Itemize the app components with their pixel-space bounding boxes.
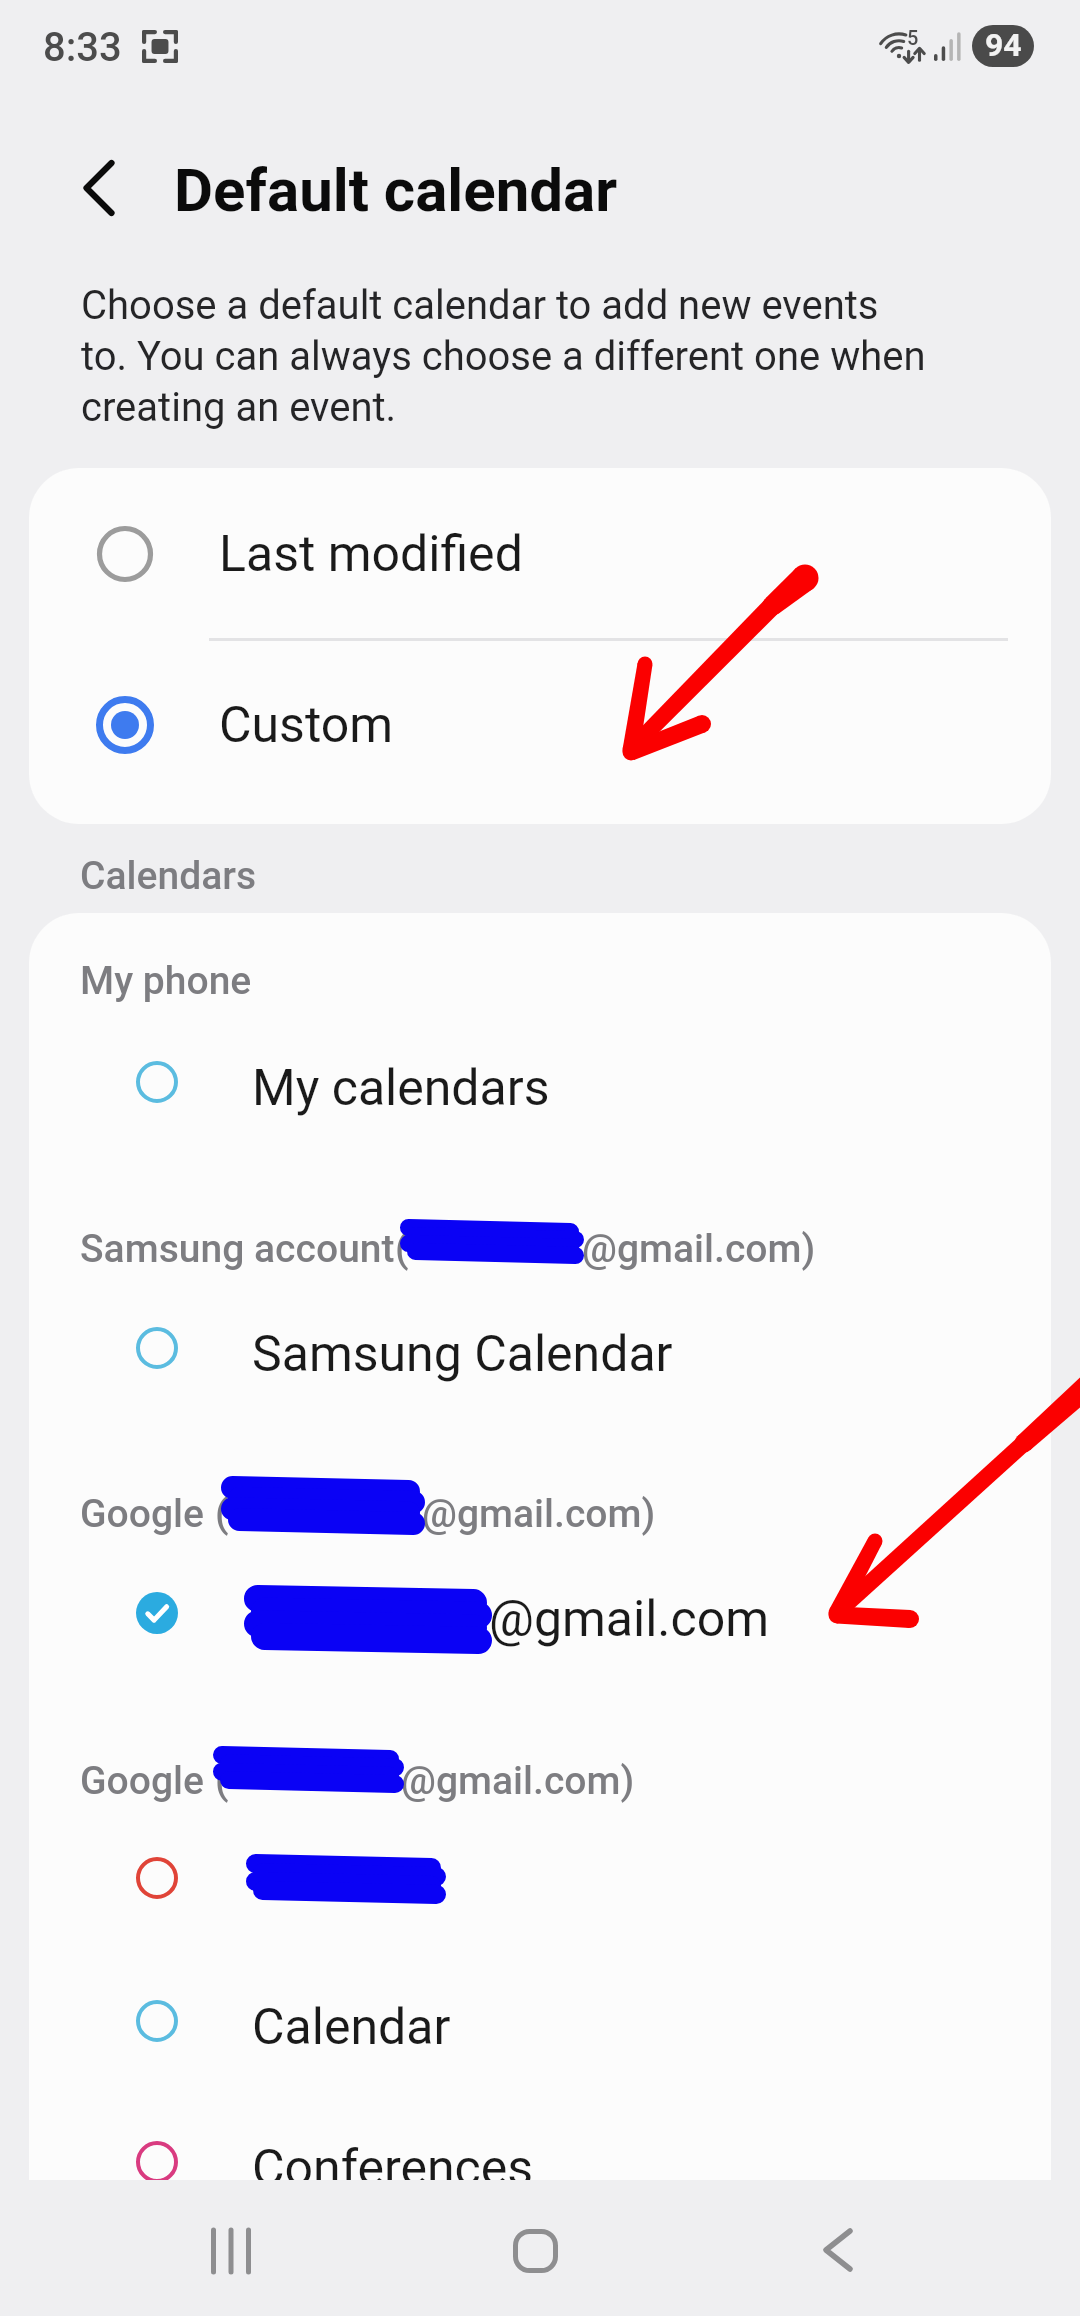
button[interactable]: Last modified	[29, 468, 1051, 638]
button[interactable]: Back	[778, 2180, 1080, 2316]
button[interactable]: Conferences	[29, 2092, 1051, 2180]
staticText: 5	[907, 26, 919, 49]
staticText: 8:33	[43, 24, 122, 71]
button[interactable]: Home	[475, 2180, 1080, 2316]
button[interactable]: @gmail.com	[29, 1543, 1051, 1683]
staticText: Calendar	[252, 1998, 451, 2057]
staticText: @gmail.com)	[422, 1491, 656, 1537]
button[interactable]	[29, 1808, 1051, 1948]
button[interactable]: Calendar	[29, 1951, 1051, 2091]
staticText: Calendars	[80, 853, 257, 899]
staticText: 94	[985, 26, 1022, 64]
staticText: Choose a default calendar to add new eve…	[81, 282, 926, 431]
button[interactable]: Recent apps	[171, 2180, 1080, 2316]
staticText: Samsung Calendar	[252, 1325, 673, 1384]
staticText: My phone	[80, 958, 252, 1004]
staticText: Google	[80, 1758, 204, 1804]
staticText: Default calendar	[174, 155, 618, 225]
staticText: @gmail.com)	[401, 1758, 635, 1804]
staticText: @gmail.com	[489, 1590, 770, 1649]
staticText: (	[215, 1491, 229, 1537]
staticText: Samsung account	[80, 1226, 395, 1272]
staticText: Conferences	[252, 2139, 534, 2180]
staticText: Custom	[219, 696, 394, 755]
staticText: Google	[80, 1491, 204, 1537]
button[interactable]: Custom	[29, 638, 1051, 824]
staticText: (	[395, 1226, 409, 1272]
staticText: Last modified	[219, 525, 523, 584]
staticText: My calendars	[252, 1059, 550, 1118]
button[interactable]: My calendars	[29, 1012, 1051, 1152]
button[interactable]: Navigate up	[55, 144, 143, 232]
button[interactable]: Samsung Calendar	[29, 1278, 1051, 1418]
staticText: @gmail.com)	[582, 1226, 816, 1272]
staticText: (	[215, 1758, 229, 1804]
